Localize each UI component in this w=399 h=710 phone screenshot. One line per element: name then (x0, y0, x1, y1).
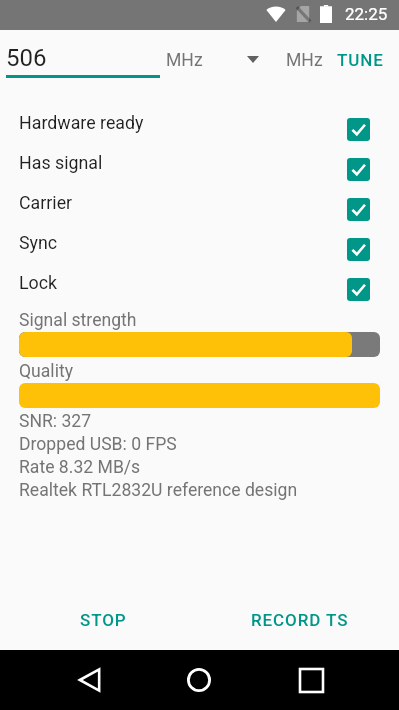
staticText: Hardware ready (19, 112, 144, 133)
staticText: 22:25 (345, 4, 388, 24)
staticText: RECORD TS (251, 610, 349, 630)
button[interactable]: Home (168, 650, 230, 710)
button[interactable]: Frequency 506 (6, 42, 160, 78)
button[interactable]: MHz (162, 49, 266, 73)
button[interactable]: Recents (280, 650, 342, 710)
button[interactable]: Has signal (0, 142, 399, 182)
staticText: 506 (6, 44, 47, 72)
staticText: Sync (19, 232, 58, 253)
button[interactable]: Lock (0, 262, 399, 302)
button[interactable]: RECORD TS (235, 600, 365, 640)
staticText: Signal strength (19, 310, 137, 331)
button[interactable]: Hardware ready (0, 102, 399, 142)
staticText: STOP (80, 610, 127, 630)
button[interactable]: Carrier (0, 182, 399, 222)
button[interactable]: Back (58, 650, 120, 710)
button[interactable]: STOP (64, 600, 143, 640)
staticText: Carrier (19, 192, 73, 213)
staticText: MHz (166, 50, 203, 71)
staticText: Rate 8.32 MB/s (19, 457, 141, 478)
staticText: MHz (286, 50, 323, 71)
button[interactable]: Sync (0, 222, 399, 262)
staticText: SNR: 327 (19, 411, 92, 432)
staticText: Realtek RTL2832U reference design (19, 480, 298, 501)
staticText: Has signal (19, 152, 103, 173)
staticText: Lock (19, 272, 58, 293)
button[interactable]: TUNE (327, 42, 394, 78)
staticText: TUNE (337, 50, 384, 70)
staticText: Dropped USB: 0 FPS (19, 434, 177, 455)
staticText: Quality (19, 361, 74, 382)
